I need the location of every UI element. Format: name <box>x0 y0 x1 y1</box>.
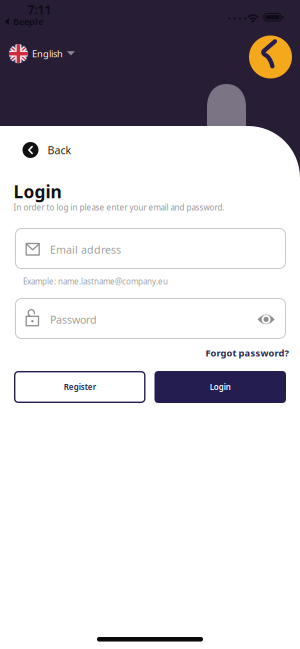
staticText: English <box>32 47 63 60</box>
button[interactable]: Forgot password? <box>205 347 288 359</box>
button[interactable]: Login <box>154 371 286 403</box>
staticText: Example: name.lastname@company.eu <box>23 276 168 287</box>
staticText: 7:11 <box>27 1 51 17</box>
staticText: Login <box>210 382 231 392</box>
staticText: Forgot password? <box>205 347 288 359</box>
button[interactable]: Show password <box>258 314 275 324</box>
staticText: Register <box>64 382 96 392</box>
staticText: In order to log in please enter your ema… <box>13 202 224 213</box>
button[interactable]: Register <box>14 371 145 403</box>
staticText: Password <box>50 312 97 327</box>
button[interactable]: Back <box>22 142 71 158</box>
staticText: Back <box>47 143 71 157</box>
staticText: Login <box>13 180 61 203</box>
button[interactable]: English <box>9 44 75 63</box>
staticText: Beeple <box>13 15 43 28</box>
staticText: Email address <box>50 242 121 257</box>
